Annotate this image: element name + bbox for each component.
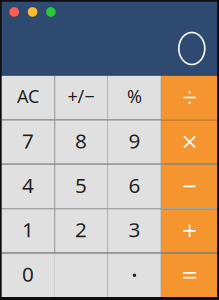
button[interactable]: 7 xyxy=(2,120,54,164)
button[interactable]: 5 xyxy=(55,165,107,208)
staticText: +/− xyxy=(68,84,95,108)
staticText: 6 xyxy=(128,171,140,199)
button[interactable]: 6 xyxy=(108,165,161,208)
staticText: 7 xyxy=(22,126,34,154)
button[interactable]: Divide xyxy=(162,76,217,119)
staticText: 2 xyxy=(75,215,87,243)
button[interactable]: Minimize xyxy=(28,7,37,17)
staticText: 0 xyxy=(22,260,34,288)
button[interactable]: Subtract xyxy=(162,165,217,208)
button[interactable]: +/− xyxy=(55,76,107,119)
button[interactable]: 8 xyxy=(55,120,107,164)
button[interactable]: % xyxy=(108,76,161,119)
button[interactable]: 9 xyxy=(108,120,161,164)
button[interactable]: Close xyxy=(9,7,19,17)
button[interactable]: 2 xyxy=(55,209,107,252)
staticText: 4 xyxy=(22,171,34,199)
staticText: 5 xyxy=(75,171,87,199)
staticText: % xyxy=(127,84,142,108)
button[interactable]: 3 xyxy=(108,209,161,252)
button[interactable]: Equals xyxy=(162,254,217,297)
button[interactable]: Decimal point xyxy=(108,254,161,297)
staticText: 9 xyxy=(128,126,140,154)
button[interactable]: Multiply xyxy=(162,120,217,164)
button[interactable]: AC xyxy=(2,76,54,119)
staticText: AC xyxy=(17,84,39,108)
staticText: 3 xyxy=(128,215,140,243)
button[interactable]: 0 xyxy=(2,254,107,297)
button[interactable]: Add xyxy=(162,209,217,252)
button[interactable]: Zoom xyxy=(46,7,56,17)
button[interactable]: 4 xyxy=(2,165,54,208)
staticText: 8 xyxy=(75,126,87,154)
button[interactable]: 1 xyxy=(2,209,54,252)
staticText: 1 xyxy=(22,215,34,243)
